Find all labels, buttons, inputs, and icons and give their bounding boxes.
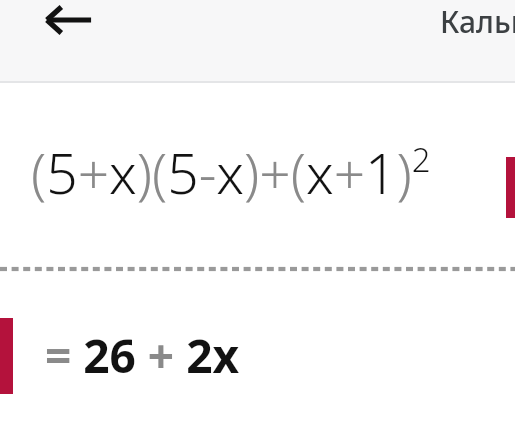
staticText: Калькулятор: [440, 1, 515, 42]
staticText: (5+x)(5-x)+(x+1)2: [31, 135, 431, 210]
button[interactable]: Back: [45, 0, 93, 44]
staticText: = 26 + 2x: [45, 324, 240, 387]
button[interactable]: = 26 + 2x: [0, 272, 515, 439]
button[interactable]: (5+x)(5-x)+(x+1)2: [0, 83, 515, 270]
button[interactable]: Калькулятор: [440, 0, 515, 45]
